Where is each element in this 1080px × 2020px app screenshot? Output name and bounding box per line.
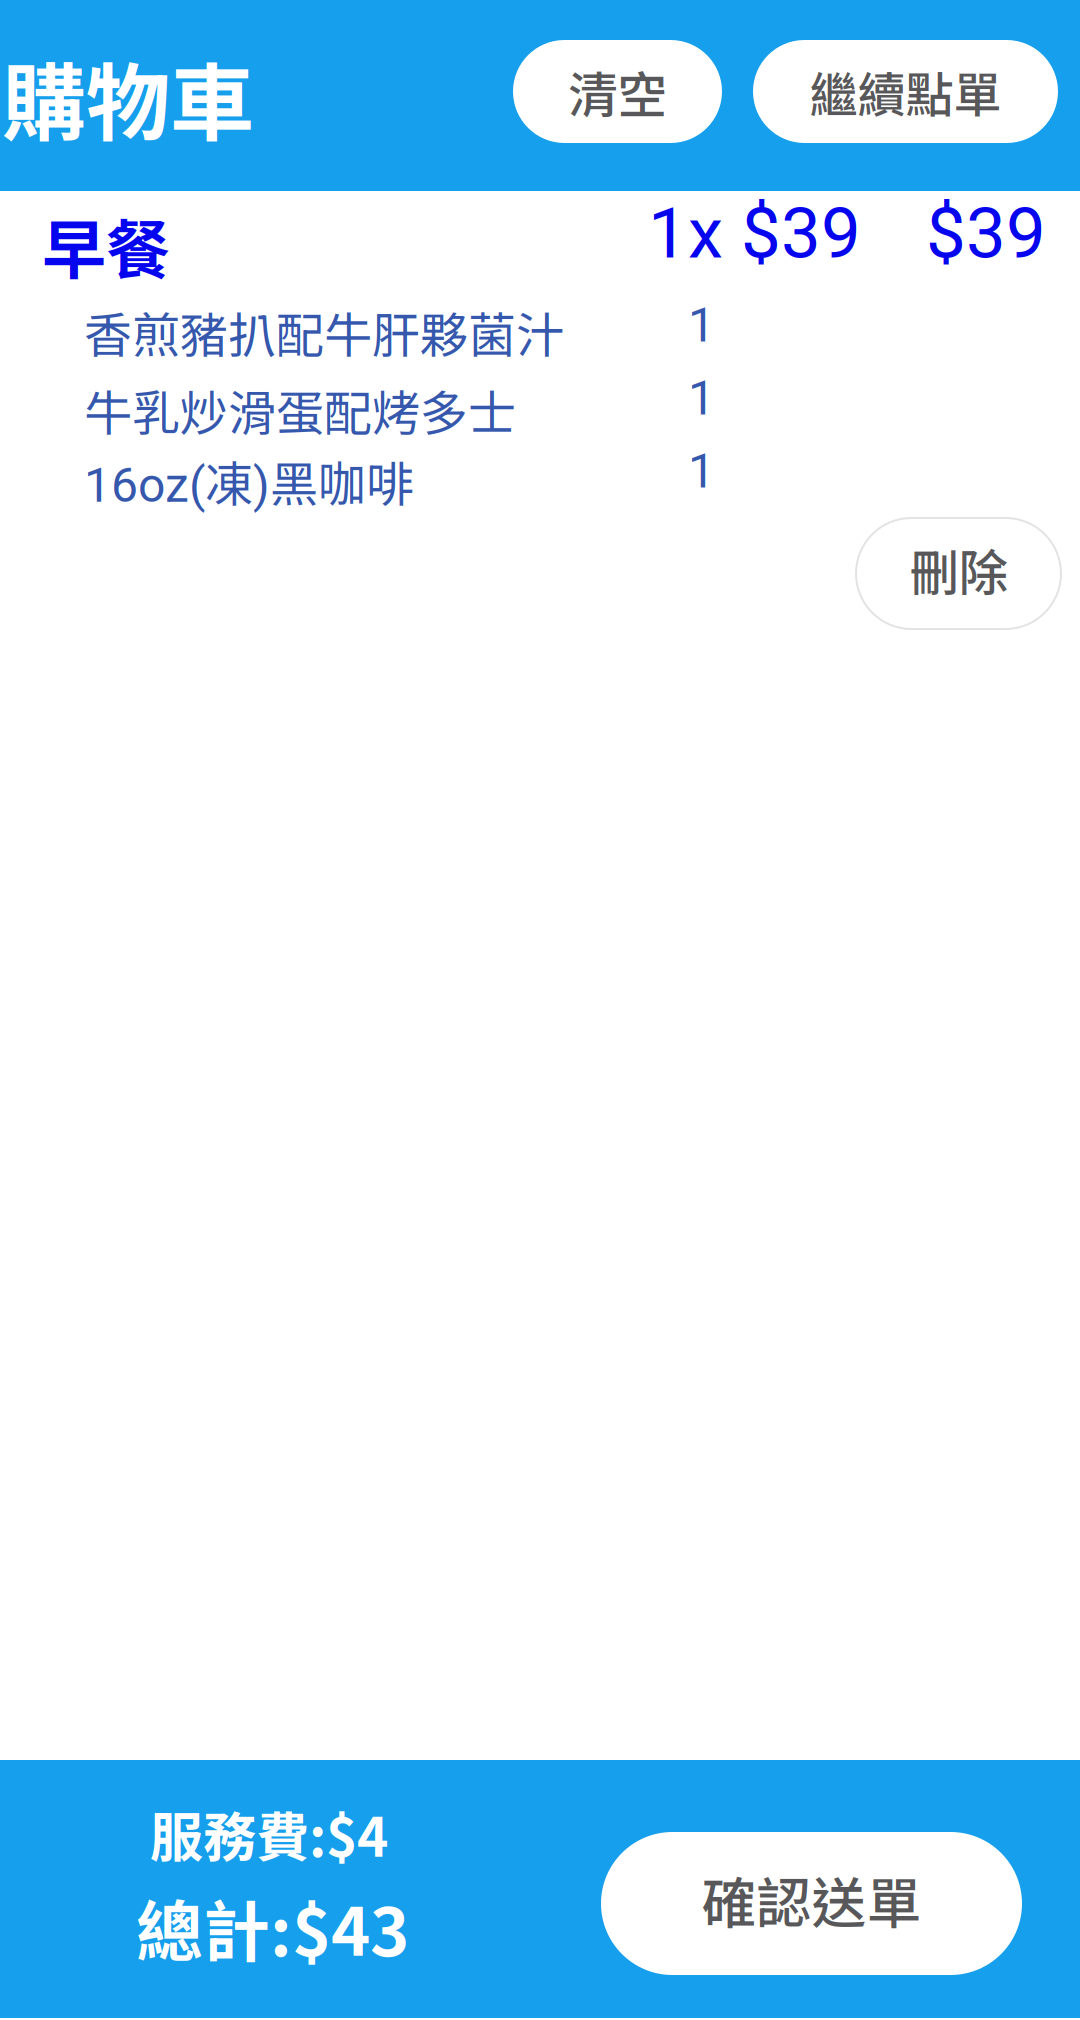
staticText: 1 (688, 297, 715, 353)
staticText: 香煎豬扒配牛肝夥菌汁 (84, 297, 564, 366)
staticText: 繼續點單 (809, 57, 1001, 126)
staticText: $39 (926, 192, 1046, 275)
staticText: 購物車 (2, 36, 254, 158)
staticText: 1 (688, 443, 715, 499)
staticText: 早餐 (42, 199, 170, 292)
button[interactable]: 確認送單 (601, 1832, 1022, 1975)
staticText: 刪除 (909, 534, 1007, 605)
staticText: 1x $39 (648, 192, 861, 275)
staticText: 總計:$43 (136, 1879, 409, 1975)
button[interactable]: 繼續點單 (753, 40, 1058, 143)
staticText: 服務費:$4 (150, 1795, 388, 1872)
button[interactable]: 刪除 (856, 518, 1061, 629)
staticText: 清空 (568, 56, 666, 127)
staticText: 16oz(凍)黑咖啡 (84, 446, 414, 515)
button[interactable]: 清空 (513, 40, 722, 143)
staticText: 牛乳炒滑蛋配烤多士 (84, 375, 516, 444)
staticText: 1 (688, 370, 715, 426)
staticText: 確認送單 (701, 1860, 921, 1939)
